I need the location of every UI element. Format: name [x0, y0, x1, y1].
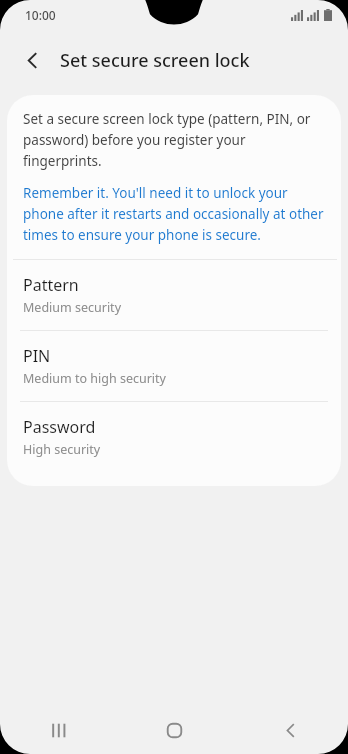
staticText: Medium to high security	[23, 370, 166, 387]
button[interactable]: Recent apps	[0, 706, 116, 754]
staticText: Password	[23, 416, 96, 438]
staticText: PIN	[23, 345, 51, 367]
staticText: Remember it. You'll need it to unlock yo…	[23, 184, 325, 244]
staticText: 10:00	[25, 7, 56, 23]
button[interactable]: Pattern	[7, 260, 341, 330]
staticText: Medium security	[23, 299, 122, 316]
staticText: Set secure screen lock	[60, 48, 250, 73]
button[interactable]: Navigate up	[12, 40, 52, 80]
button[interactable]: PIN	[7, 331, 341, 401]
button[interactable]: Home	[116, 706, 232, 754]
staticText: High security	[23, 441, 101, 458]
staticText: Set a secure screen lock type (pattern, …	[23, 110, 325, 170]
button[interactable]: Password	[7, 402, 341, 472]
staticText: Pattern	[23, 274, 79, 296]
button[interactable]: Back	[232, 706, 348, 754]
